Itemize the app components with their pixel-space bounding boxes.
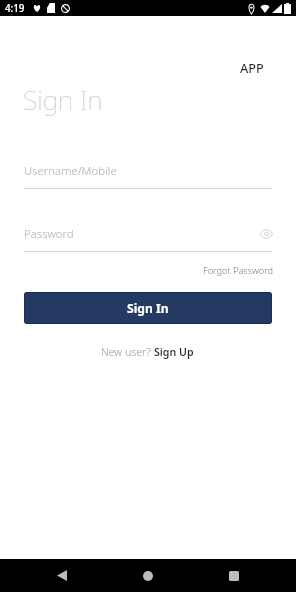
button[interactable]: New user? — [101, 345, 194, 359]
button[interactable]: Show password — [256, 226, 276, 242]
button[interactable]: Recents — [216, 559, 252, 592]
staticText: Sign In — [127, 300, 169, 316]
staticText: Sign Up — [154, 345, 194, 359]
staticText: New user? — [101, 345, 154, 359]
staticText: Sign In — [23, 82, 103, 118]
staticText: Username/Mobile — [24, 163, 117, 179]
staticText: APP — [240, 59, 264, 76]
button[interactable]: APP — [232, 59, 264, 76]
button[interactable]: Forgot Password — [194, 264, 274, 277]
button[interactable]: Password — [24, 220, 248, 248]
button[interactable]: Sign In — [24, 292, 272, 324]
button[interactable]: Back — [44, 559, 80, 592]
staticText: Password — [24, 226, 74, 242]
button[interactable]: Username/Mobile — [24, 157, 272, 185]
staticText: 4:19 — [5, 2, 25, 15]
staticText: Forgot Password — [203, 264, 274, 277]
button[interactable]: Home — [130, 559, 166, 592]
